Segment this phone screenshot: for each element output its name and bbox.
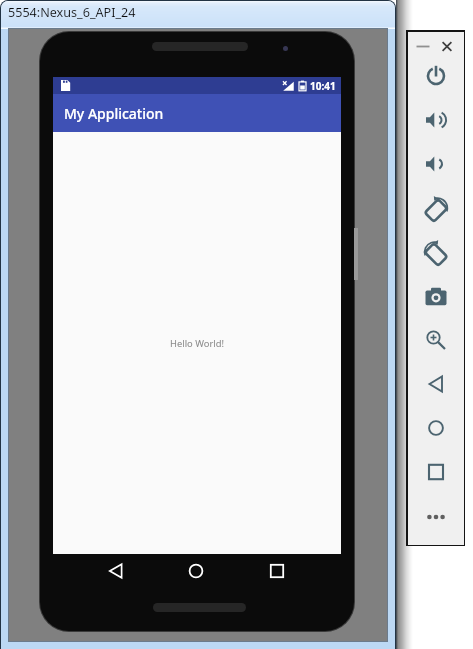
staticText: 10:41 xyxy=(310,79,336,93)
button[interactable]: Zoom xyxy=(423,327,449,353)
button[interactable]: Volume up xyxy=(423,108,449,134)
button[interactable]: Recent apps xyxy=(270,564,284,578)
button[interactable]: Minimize xyxy=(414,38,432,54)
button[interactable]: Home xyxy=(189,564,203,578)
button[interactable]: Back xyxy=(423,371,449,397)
button[interactable]: Back xyxy=(109,564,123,578)
staticText: Hello World! xyxy=(170,337,225,350)
button[interactable]: Close xyxy=(439,38,455,54)
button[interactable]: My Application xyxy=(53,94,341,132)
button[interactable]: Rotate right xyxy=(423,240,449,266)
button[interactable]: Home xyxy=(423,415,449,441)
button[interactable]: Rotate left xyxy=(423,196,449,222)
staticText: My Application xyxy=(64,104,164,123)
button[interactable]: Overview xyxy=(423,459,449,485)
staticText: 5554:Nexus_6_API_24 xyxy=(8,4,136,21)
button[interactable]: Power xyxy=(423,64,449,90)
button[interactable]: More xyxy=(423,504,449,530)
button[interactable]: Screenshot xyxy=(423,283,449,309)
button[interactable]: Volume down xyxy=(423,152,449,178)
